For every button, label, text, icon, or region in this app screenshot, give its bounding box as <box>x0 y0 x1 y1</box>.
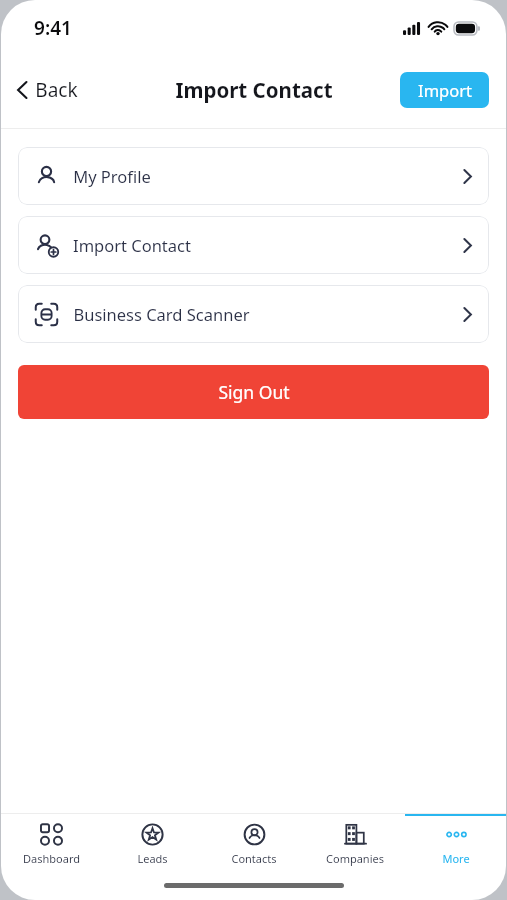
button[interactable]: My Profile <box>18 147 489 205</box>
staticText: Leads <box>137 851 168 866</box>
staticText: Companies <box>326 851 384 866</box>
button[interactable]: Leads <box>102 814 203 876</box>
staticText: More <box>442 851 470 866</box>
button[interactable]: Dashboard <box>1 814 102 876</box>
button[interactable]: Import Contact <box>18 216 489 274</box>
staticText: 9:41 <box>34 15 72 41</box>
staticText: Import <box>418 79 472 101</box>
staticText: Contacts <box>231 851 277 866</box>
button[interactable]: Back <box>11 71 84 109</box>
staticText: Dashboard <box>23 851 80 866</box>
staticText: Sign Out <box>218 380 290 404</box>
button[interactable]: Import <box>400 72 489 108</box>
button[interactable]: Contacts <box>203 814 304 876</box>
button[interactable]: Business Card Scanner <box>18 285 489 343</box>
staticText: Business Card Scanner <box>73 303 250 325</box>
staticText: My Profile <box>73 165 151 187</box>
staticText: Import Contact <box>175 76 333 104</box>
staticText: Import Contact <box>73 234 191 256</box>
button[interactable]: More <box>405 814 506 876</box>
button[interactable]: Sign Out <box>18 365 489 419</box>
button[interactable]: Companies <box>304 814 405 876</box>
staticText: Back <box>35 77 78 103</box>
